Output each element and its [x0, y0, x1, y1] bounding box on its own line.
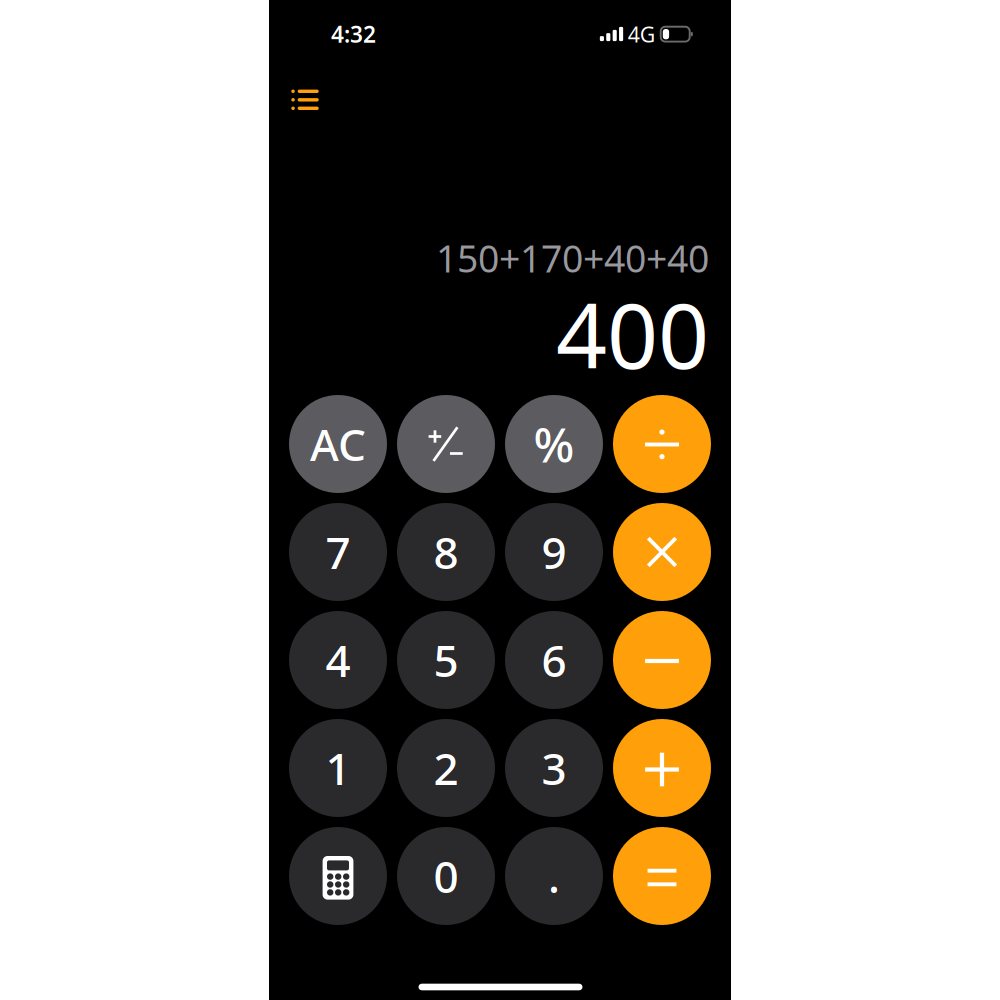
- button[interactable]: %: [505, 395, 603, 493]
- button[interactable]: .: [505, 827, 603, 925]
- staticText: 8: [433, 523, 458, 581]
- staticText: 2: [433, 739, 458, 797]
- button[interactable]: Equals: [613, 827, 711, 925]
- button[interactable]: 7: [289, 503, 387, 601]
- staticText: 150+170+40+40: [436, 233, 709, 283]
- button[interactable]: 0: [397, 827, 495, 925]
- staticText: %: [533, 412, 574, 476]
- button[interactable]: Calculator: [289, 827, 387, 925]
- button[interactable]: Add: [613, 719, 711, 817]
- staticText: 400: [556, 275, 709, 393]
- button[interactable]: 1: [289, 719, 387, 817]
- button[interactable]: Subtract: [613, 611, 711, 709]
- staticText: 0: [433, 847, 458, 905]
- button[interactable]: Divide: [613, 395, 711, 493]
- button[interactable]: AC: [289, 395, 387, 493]
- staticText: 4G: [628, 20, 656, 48]
- button[interactable]: 2: [397, 719, 495, 817]
- staticText: AC: [310, 415, 366, 473]
- button[interactable]: 6: [505, 611, 603, 709]
- staticText: .: [548, 847, 560, 905]
- staticText: 4:32: [331, 19, 376, 49]
- button[interactable]: Plus minus: [397, 395, 495, 493]
- button[interactable]: History: [283, 79, 327, 121]
- staticText: 9: [541, 523, 566, 581]
- button[interactable]: 5: [397, 611, 495, 709]
- staticText: 1: [325, 739, 350, 797]
- button[interactable]: 8: [397, 503, 495, 601]
- staticText: 6: [541, 631, 566, 689]
- staticText: 3: [541, 739, 566, 797]
- button[interactable]: 4: [289, 611, 387, 709]
- staticText: 7: [325, 523, 350, 581]
- button[interactable]: Multiply: [613, 503, 711, 601]
- button[interactable]: 3: [505, 719, 603, 817]
- staticText: 4: [325, 631, 350, 689]
- button[interactable]: 9: [505, 503, 603, 601]
- staticText: 5: [433, 631, 458, 689]
